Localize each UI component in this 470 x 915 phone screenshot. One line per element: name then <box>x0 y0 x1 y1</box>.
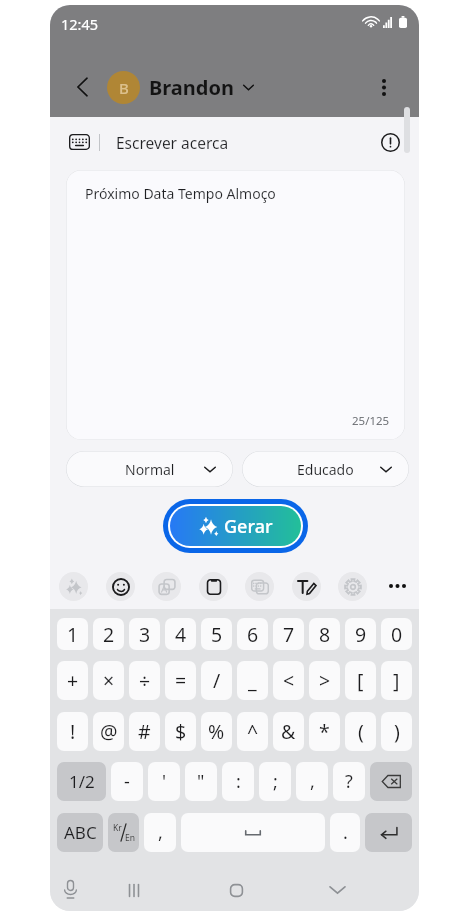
button[interactable]: Emoji <box>106 572 135 601</box>
button[interactable]: ÷ <box>129 661 160 700</box>
button[interactable]: ^ <box>237 712 268 751</box>
button[interactable]: % <box>201 712 232 751</box>
button[interactable]: 7 <box>273 618 304 650</box>
staticText: # <box>138 718 151 745</box>
button[interactable]: ) <box>381 712 412 751</box>
staticText: * <box>319 718 330 745</box>
button[interactable]: ( <box>345 712 376 751</box>
button[interactable]: 9 <box>345 618 376 650</box>
staticText: & <box>281 718 296 745</box>
button[interactable]: Space <box>181 813 325 852</box>
button[interactable]: - <box>111 762 143 801</box>
button[interactable]: Backspace <box>370 762 412 801</box>
button[interactable]: 1 <box>57 618 88 650</box>
button[interactable]: Voice input <box>54 873 86 905</box>
button[interactable]: Translate <box>152 572 181 601</box>
staticText: Escrever acerca <box>116 132 229 153</box>
button[interactable]: # <box>129 712 160 751</box>
button[interactable]: Change language <box>108 813 139 852</box>
staticText: 1 <box>67 621 79 648</box>
staticText: 9 <box>355 621 367 648</box>
staticText: ; <box>273 769 278 794</box>
staticText: = <box>175 667 187 694</box>
button[interactable]: $ <box>165 712 196 751</box>
button[interactable]: Handwriting <box>292 572 321 601</box>
button[interactable]: Chat <box>245 572 274 601</box>
button[interactable]: × <box>93 661 124 700</box>
staticText: 12:45 <box>61 14 99 34</box>
button[interactable]: Educado <box>242 451 409 487</box>
button[interactable]: ABC <box>57 813 103 852</box>
button[interactable]: Hide keyboard <box>321 874 353 906</box>
button[interactable]: 3 <box>129 618 160 650</box>
button[interactable]: , <box>296 762 328 801</box>
button[interactable]: [ <box>345 661 376 700</box>
staticText: 3 <box>139 621 151 648</box>
staticText: [ <box>357 667 364 694</box>
staticText: Educado <box>297 460 354 479</box>
button[interactable]: Home <box>220 874 252 906</box>
button[interactable]: More options <box>368 71 400 103</box>
button[interactable]: 4 <box>165 618 196 650</box>
staticText: 6 <box>247 621 259 648</box>
button[interactable]: B <box>107 67 254 107</box>
staticText: ÷ <box>139 667 151 694</box>
button[interactable]: Back <box>68 72 96 102</box>
staticText: ( <box>358 718 364 745</box>
button[interactable]: ] <box>381 661 412 700</box>
button[interactable]: 8 <box>309 618 340 650</box>
button[interactable]: 6 <box>237 618 268 650</box>
staticText: ' <box>162 769 167 794</box>
staticText: @ <box>100 718 118 745</box>
button[interactable]: ? <box>333 762 365 801</box>
button[interactable]: / <box>201 661 232 700</box>
button[interactable]: More <box>382 571 412 601</box>
staticText: , <box>158 820 163 845</box>
button[interactable]: * <box>309 712 340 751</box>
button[interactable]: > <box>309 661 340 700</box>
staticText: + <box>67 667 79 694</box>
staticText: × <box>103 667 115 694</box>
staticText: Normal <box>125 460 175 479</box>
staticText: 1/2 <box>69 770 95 793</box>
button[interactable]: . <box>330 813 360 852</box>
staticText: ! <box>70 718 76 745</box>
button[interactable]: 5 <box>201 618 232 650</box>
button[interactable]: Recents <box>118 874 150 906</box>
staticText: $ <box>175 718 187 745</box>
button[interactable]: Keyboard <box>62 125 96 159</box>
button[interactable]: Info <box>375 127 405 157</box>
button[interactable]: & <box>273 712 304 751</box>
button[interactable]: Settings <box>338 572 367 601</box>
button[interactable]: Enter <box>365 813 412 852</box>
button[interactable]: ! <box>57 712 88 751</box>
button[interactable]: Clipboard <box>199 572 228 601</box>
button[interactable]: ' <box>148 762 180 801</box>
staticText: " <box>197 769 205 794</box>
button[interactable]: " <box>185 762 217 801</box>
staticText: % <box>208 718 225 745</box>
button[interactable]: Writing assist <box>59 572 88 601</box>
button[interactable]: , <box>144 813 176 852</box>
staticText: , <box>310 769 315 794</box>
staticText: 8 <box>319 621 331 648</box>
button[interactable]: = <box>165 661 196 700</box>
button[interactable]: _ <box>237 661 268 700</box>
staticText: ? <box>345 769 353 794</box>
button[interactable]: + <box>57 661 88 700</box>
staticText: En <box>125 832 135 844</box>
button[interactable]: Próximo Data Tempo Almoço <box>66 170 405 440</box>
button[interactable]: : <box>222 762 254 801</box>
button[interactable]: < <box>273 661 304 700</box>
button[interactable]: 1/2 <box>57 762 106 801</box>
button[interactable]: ; <box>259 762 291 801</box>
staticText: 25/125 <box>352 413 390 429</box>
button[interactable]: 2 <box>93 618 124 650</box>
button[interactable]: @ <box>93 712 124 751</box>
button[interactable]: Normal <box>66 451 233 487</box>
staticText: ABC <box>64 821 97 844</box>
staticText: 4 <box>175 621 187 648</box>
staticText: ] <box>393 667 400 694</box>
button[interactable]: 0 <box>381 618 412 650</box>
button[interactable]: Gerar <box>163 499 308 553</box>
